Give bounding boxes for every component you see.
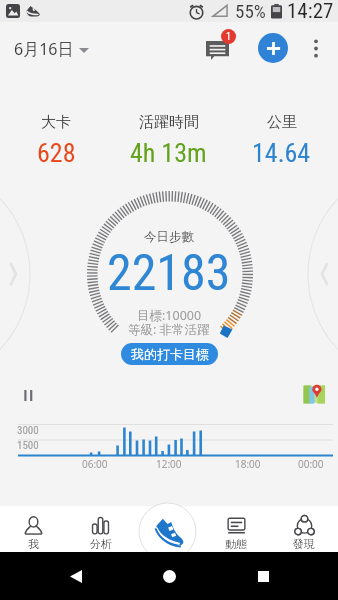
button[interactable]: Map xyxy=(302,382,326,406)
button[interactable]: 分析 xyxy=(67,506,134,552)
staticText: 12:00 xyxy=(156,457,182,471)
staticText: 目標:10000 xyxy=(137,307,202,324)
button[interactable]: Recents xyxy=(245,558,281,594)
button[interactable]: Messages xyxy=(199,30,239,70)
button[interactable]: Back xyxy=(58,558,94,594)
staticText: 動態 xyxy=(225,537,247,551)
staticText: 628 xyxy=(37,138,76,168)
button[interactable]: 我的打卡目標 xyxy=(121,343,218,365)
button[interactable]: Add xyxy=(258,33,288,63)
staticText: 22183 xyxy=(107,244,231,303)
staticText: 我的打卡目標 xyxy=(131,346,209,362)
staticText: 06:00 xyxy=(82,457,108,471)
staticText: 公里 xyxy=(267,113,297,132)
button[interactable]: Steps xyxy=(139,503,196,560)
button[interactable]: 6月16日 xyxy=(8,34,95,64)
button[interactable]: Pause xyxy=(18,386,40,408)
staticText: 等級: 非常活躍 xyxy=(128,321,210,338)
staticText: 3000 xyxy=(17,424,39,437)
staticText: 分析 xyxy=(90,537,112,551)
staticText: 14:27 xyxy=(287,0,334,21)
staticText: 活躍時間 xyxy=(139,113,199,132)
staticText: 55% xyxy=(235,0,266,22)
staticText: 4h 13m xyxy=(130,138,207,168)
button[interactable]: 我 xyxy=(0,506,67,552)
staticText: 發現 xyxy=(293,537,315,551)
button[interactable]: More options xyxy=(300,32,332,64)
staticText: 6月16日 xyxy=(14,38,74,60)
staticText: 1500 xyxy=(17,439,39,452)
staticText: 今日步數 xyxy=(144,229,194,245)
staticText: 18:00 xyxy=(235,457,261,471)
button[interactable]: Home xyxy=(151,558,187,594)
staticText: 大卡 xyxy=(41,113,71,132)
staticText: 00:00 xyxy=(298,457,324,471)
button[interactable]: 發現 xyxy=(270,506,338,552)
staticText: 1 xyxy=(226,31,231,43)
button[interactable]: 動態 xyxy=(202,506,270,552)
staticText: 我 xyxy=(28,537,39,551)
staticText: 14.64 xyxy=(252,138,311,168)
